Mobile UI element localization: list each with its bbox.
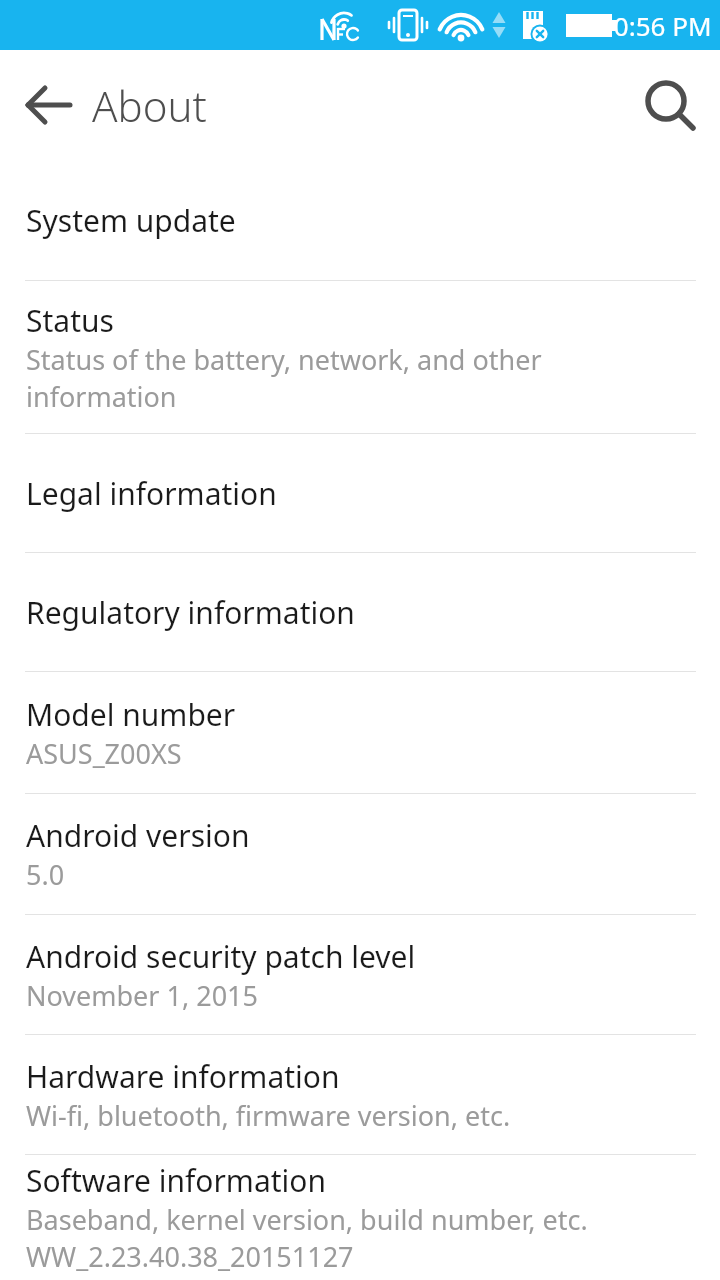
- staticText: November 1, 2015: [26, 977, 258, 1014]
- button[interactable]: Android version: [0, 794, 720, 914]
- staticText: Status: [26, 300, 114, 341]
- staticText: Wi-fi, bluetooth, firmware version, etc.: [26, 1097, 511, 1134]
- staticText: information: [26, 378, 177, 415]
- staticText: Baseband, kernel version, build number, …: [26, 1201, 588, 1238]
- button[interactable]: Legal information: [0, 434, 720, 552]
- button[interactable]: Status: [0, 281, 720, 433]
- button[interactable]: Model number: [0, 672, 720, 793]
- staticText: Model number: [26, 694, 236, 735]
- staticText: Regulatory information: [26, 592, 355, 633]
- button[interactable]: Android security patch level: [0, 915, 720, 1034]
- button[interactable]: Software information: [0, 1155, 720, 1280]
- button[interactable]: Search: [632, 67, 708, 143]
- staticText: Status of the battery, network, and othe…: [26, 341, 542, 378]
- button[interactable]: System update: [0, 160, 720, 280]
- staticText: WW_2.23.40.38_20151127: [26, 1238, 354, 1275]
- staticText: Software information: [26, 1160, 326, 1201]
- staticText: 10:56 PM: [599, 8, 712, 43]
- staticText: 5.0: [26, 856, 65, 893]
- staticText: Android security patch level: [26, 936, 416, 977]
- staticText: Android version: [26, 815, 250, 856]
- staticText: About: [92, 77, 207, 134]
- staticText: ASUS_Z00XS: [26, 735, 182, 772]
- button[interactable]: Hardware information: [0, 1035, 720, 1154]
- staticText: Hardware information: [26, 1056, 340, 1097]
- button[interactable]: Regulatory information: [0, 553, 720, 671]
- staticText: Legal information: [26, 473, 277, 514]
- button[interactable]: Navigate up: [8, 64, 90, 146]
- staticText: System update: [26, 200, 236, 241]
